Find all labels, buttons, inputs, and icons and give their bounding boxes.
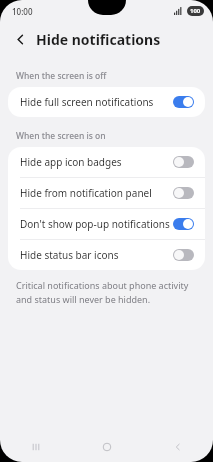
- staticText: When the screen is off: [16, 70, 107, 82]
- button[interactable]: On: [173, 96, 194, 108]
- staticText: Hide status bar icons: [20, 248, 173, 262]
- staticText: 100: [190, 7, 201, 15]
- button[interactable]: Hide status bar icons: [8, 240, 205, 270]
- button[interactable]: Off: [173, 187, 194, 199]
- button[interactable]: Back: [142, 432, 213, 462]
- button[interactable]: Hide from notification panel: [8, 178, 205, 208]
- button[interactable]: Recents: [0, 432, 71, 462]
- staticText: Critical notifications about phone activ…: [16, 279, 197, 306]
- button[interactable]: On: [173, 218, 194, 230]
- staticText: Don't show pop-up notifications: [20, 217, 173, 231]
- button[interactable]: Hide full screen notifications: [8, 87, 205, 117]
- staticText: Hide notifications: [36, 30, 161, 49]
- staticText: 10:00: [12, 6, 33, 17]
- staticText: Hide app icon badges: [20, 155, 173, 169]
- button[interactable]: Back: [9, 28, 31, 50]
- staticText: Hide full screen notifications: [20, 95, 173, 109]
- staticText: Hide from notification panel: [20, 186, 173, 200]
- staticText: When the screen is on: [16, 130, 106, 142]
- button[interactable]: Home: [71, 432, 142, 462]
- button[interactable]: Don't show pop-up notifications: [8, 209, 205, 239]
- button[interactable]: Off: [173, 249, 194, 261]
- button[interactable]: Off: [173, 156, 194, 168]
- button[interactable]: Hide app icon badges: [8, 147, 205, 177]
